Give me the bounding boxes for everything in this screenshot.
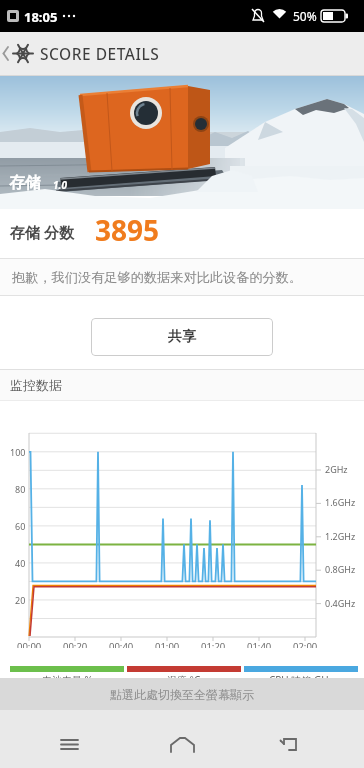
button[interactable] [122, 710, 243, 768]
staticText: 电池电量 % [42, 673, 93, 687]
button[interactable] [0, 32, 14, 75]
staticText: 1.6GHz [325, 496, 356, 508]
staticText: 2GHz [325, 463, 348, 475]
button[interactable]: 共享 [91, 318, 273, 356]
staticText: 01:20 [201, 640, 226, 653]
staticText: 监控数据 [10, 377, 62, 393]
staticText: 0.8GHz [325, 563, 356, 575]
button[interactable] [243, 710, 364, 768]
staticText: 3895 [95, 211, 160, 249]
staticText: 50% [293, 8, 317, 24]
staticText: 40 [15, 557, 26, 569]
staticText: 60 [15, 520, 26, 532]
staticText: 20 [15, 594, 26, 606]
staticText: 00:00 [17, 640, 42, 653]
staticText: 1.0 [53, 178, 67, 192]
staticText: 存储 [9, 173, 41, 193]
staticText: 1.2GHz [325, 530, 356, 542]
button[interactable]: 點選此處切換至全螢幕顯示 [0, 678, 364, 710]
staticText: 01:40 [247, 640, 272, 653]
staticText: SCORE DETAILS [40, 43, 160, 64]
staticText: 100 [10, 446, 26, 458]
staticText: 存储 分数 [10, 222, 74, 242]
staticText: 01:00 [155, 640, 180, 653]
staticText: 0.4GHz [325, 597, 356, 609]
button[interactable] [0, 710, 122, 768]
staticText: CPU 時鐘 GHz [269, 673, 334, 687]
staticText: 00:20 [63, 640, 88, 653]
staticText: 00:40 [109, 640, 134, 653]
staticText: 點選此處切換至全螢幕顯示 [110, 687, 254, 702]
staticText: 温度 °C [167, 673, 201, 687]
staticText: 18:05 [24, 8, 58, 26]
staticText: 80 [15, 483, 26, 495]
staticText: 02:00 [293, 640, 318, 653]
staticText: 抱歉，我们没有足够的数据来对比此设备的分数。 [12, 269, 303, 286]
staticText: 共享 [168, 328, 196, 346]
